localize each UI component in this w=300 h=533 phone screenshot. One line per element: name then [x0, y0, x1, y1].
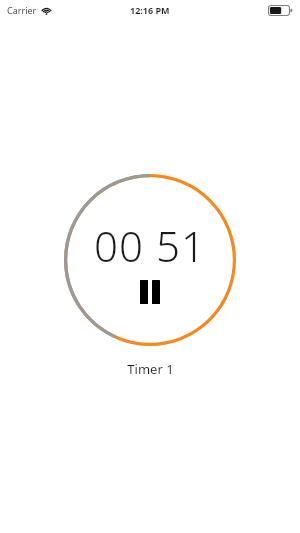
button[interactable]: Pause timer	[64, 174, 236, 346]
other: Battery level	[268, 5, 293, 16]
staticText: 00 51	[94, 217, 206, 274]
staticText: Timer 1	[127, 360, 174, 378]
other: Paused	[140, 280, 160, 304]
staticText: Carrier	[7, 4, 37, 16]
staticText: 12:16 PM	[130, 4, 170, 16]
other: Wi-Fi signal	[41, 6, 52, 15]
